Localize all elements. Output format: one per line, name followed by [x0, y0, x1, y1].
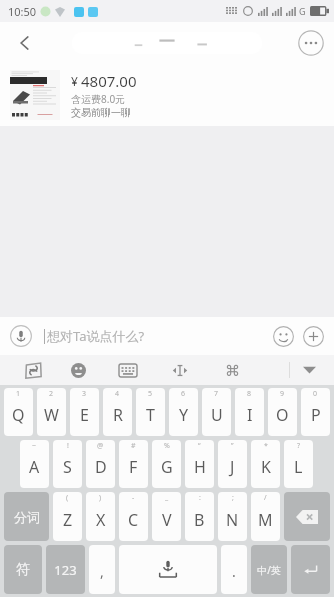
- staticText: 1: [16, 389, 21, 399]
- staticText: B: [194, 509, 205, 531]
- button[interactable]: 0: [301, 388, 330, 436]
- staticText: .: [232, 562, 236, 581]
- button[interactable]: Backspace: [284, 492, 330, 541]
- staticText: 8: [247, 389, 252, 399]
- button[interactable]: Back: [8, 26, 42, 60]
- button[interactable]: 8: [235, 388, 264, 436]
- button[interactable]: ~: [20, 440, 49, 488]
- button[interactable]: /: [251, 492, 280, 541]
- button[interactable]: #: [119, 440, 148, 488]
- button[interactable]: 符: [4, 545, 42, 594]
- staticText: Y: [179, 404, 189, 426]
- staticText: G: [299, 5, 306, 17]
- button[interactable]: Input method: [12, 355, 54, 385]
- staticText: G: [161, 456, 173, 478]
- staticText: 中/英: [257, 563, 281, 577]
- button[interactable]: ¥: [0, 64, 334, 126]
- staticText: 符: [16, 561, 30, 579]
- button[interactable]: :: [185, 492, 214, 541]
- button[interactable]: ): [86, 492, 115, 541]
- staticText: 0: [313, 389, 318, 399]
- staticText: F: [129, 456, 138, 478]
- button[interactable]: Hide keyboard: [290, 355, 328, 385]
- staticText: C: [128, 509, 139, 531]
- staticText: N: [226, 509, 239, 531]
- button[interactable]: ?: [284, 440, 313, 488]
- button[interactable]: -: [119, 492, 148, 541]
- button[interactable]: 123: [46, 545, 85, 594]
- button[interactable]: 中/英: [251, 545, 287, 594]
- staticText: *: [264, 441, 268, 451]
- staticText: 含运费8.0元: [71, 92, 126, 106]
- staticText: ;: [232, 493, 234, 503]
- staticText: 2: [49, 389, 54, 399]
- staticText: I: [247, 404, 253, 426]
- staticText: ¥: [71, 73, 78, 89]
- staticText: 分词: [14, 509, 40, 525]
- button[interactable]: 3: [70, 388, 99, 436]
- staticText: K: [261, 456, 271, 478]
- button[interactable]: Shortcuts: [206, 355, 258, 385]
- button[interactable]: ”: [218, 440, 247, 488]
- staticText: W: [44, 404, 59, 426]
- staticText: ~: [32, 441, 37, 451]
- staticText: T: [146, 404, 155, 426]
- button[interactable]: (: [53, 492, 82, 541]
- button[interactable]: Keyboard layout: [102, 355, 154, 385]
- staticText: A: [29, 456, 40, 478]
- staticText: E: [80, 404, 89, 426]
- staticText: H: [194, 456, 206, 478]
- button[interactable]: More options: [296, 28, 326, 58]
- staticText: V: [162, 509, 172, 531]
- button[interactable]: Add attachment: [300, 323, 326, 349]
- staticText: M: [258, 509, 273, 531]
- button[interactable]: 5: [136, 388, 165, 436]
- button[interactable]: 7: [202, 388, 231, 436]
- staticText: 4807.00: [81, 71, 137, 91]
- staticText: 6: [181, 389, 186, 399]
- staticText: 想对Ta说点什么?: [47, 327, 145, 345]
- button[interactable]: 分词: [4, 492, 49, 541]
- staticText: 3: [82, 389, 87, 399]
- staticText: “: [198, 441, 201, 451]
- staticText: 4: [115, 389, 120, 399]
- staticText: ?: [297, 441, 301, 451]
- button[interactable]: _: [152, 492, 181, 541]
- staticText: 123: [54, 561, 77, 579]
- staticText: @: [97, 441, 104, 451]
- button[interactable]: Move cursor: [154, 355, 206, 385]
- staticText: ⌘: [225, 362, 240, 379]
- button[interactable]: “: [185, 440, 214, 488]
- button[interactable]: !: [53, 440, 82, 488]
- button[interactable]: .: [221, 545, 247, 594]
- staticText: 10:50: [8, 4, 37, 19]
- button[interactable]: Enter: [291, 545, 330, 594]
- staticText: L: [294, 456, 303, 478]
- staticText: 交易前聊一聊: [71, 106, 131, 119]
- button[interactable]: Emoji: [270, 323, 296, 349]
- button[interactable]: 6: [169, 388, 198, 436]
- staticText: D: [95, 456, 107, 478]
- staticText: %: [164, 441, 170, 451]
- button[interactable]: %: [152, 440, 181, 488]
- staticText: P: [311, 404, 321, 426]
- button[interactable]: ;: [218, 492, 247, 541]
- button[interactable]: 1: [4, 388, 33, 436]
- button[interactable]: ,: [89, 545, 115, 594]
- button[interactable]: 9: [268, 388, 297, 436]
- staticText: O: [276, 404, 289, 426]
- staticText: (: [66, 493, 69, 503]
- staticText: -: [132, 493, 135, 503]
- staticText: S: [63, 456, 72, 478]
- staticText: ,: [100, 562, 104, 581]
- staticText: Z: [63, 509, 73, 531]
- button[interactable]: Voice input: [8, 323, 34, 349]
- button[interactable]: Emoji panel: [54, 355, 102, 385]
- button[interactable]: 4: [103, 388, 132, 436]
- staticText: 7: [214, 389, 219, 399]
- button[interactable]: *: [251, 440, 280, 488]
- button[interactable]: 2: [37, 388, 66, 436]
- button[interactable]: @: [86, 440, 115, 488]
- button[interactable]: Space, voice input: [119, 545, 217, 594]
- staticText: 5: [148, 389, 153, 399]
